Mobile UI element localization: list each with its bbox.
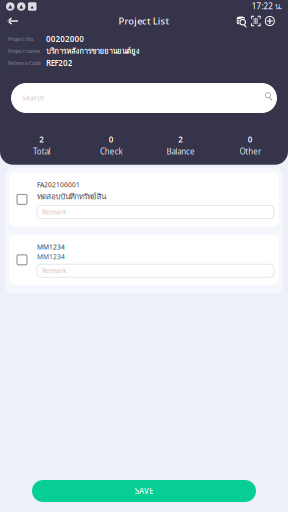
staticText: บริการหลังการขายยานยนต์ยูง: [46, 45, 140, 57]
staticText: Remark: [42, 266, 67, 275]
staticText: Search: [22, 94, 44, 102]
button[interactable]: Scan barcode: [251, 16, 261, 26]
staticText: 0: [248, 134, 253, 145]
staticText: Total: [33, 146, 50, 157]
staticText: MM1234: [37, 242, 65, 251]
staticText: Check: [100, 146, 122, 157]
button[interactable]: Back: [0, 11, 24, 31]
button[interactable]: Search database: [235, 15, 247, 27]
staticText: 00202000: [46, 34, 84, 44]
staticText: Balance: [166, 146, 195, 157]
staticText: 2: [178, 134, 183, 145]
button[interactable]: SAVE: [32, 480, 256, 502]
button[interactable]: Add: [265, 16, 275, 26]
staticText: FA202106001: [37, 180, 80, 189]
button[interactable]: MM1234: [9, 235, 279, 285]
staticText: ทดสอบบันทึกทรัพย์สิน: [37, 190, 106, 202]
button[interactable]: FA202106001: [9, 173, 279, 226]
staticText: MM1234: [37, 252, 65, 261]
staticText: REF202: [46, 58, 73, 68]
staticText: 2: [39, 134, 44, 145]
staticText: Remark: [42, 208, 67, 216]
staticText: 0: [109, 134, 114, 145]
staticText: Other: [239, 146, 261, 157]
staticText: 17:22 น.: [252, 0, 282, 13]
staticText: Refence Code: [8, 59, 41, 67]
staticText: Project No.: [8, 35, 34, 43]
staticText: Project List: [118, 15, 169, 27]
staticText: SAVE: [135, 486, 153, 496]
staticText: Project name: [8, 47, 40, 55]
